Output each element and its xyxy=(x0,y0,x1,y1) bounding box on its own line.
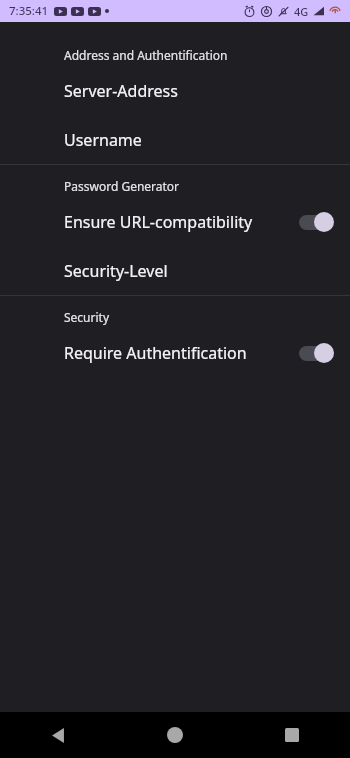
staticText: Security-Level xyxy=(64,260,334,282)
button[interactable]: Ensure URL-compatibility xyxy=(0,197,350,246)
staticText: Require Authentification xyxy=(64,342,298,364)
button[interactable]: Back xyxy=(0,712,116,758)
staticText: 4G xyxy=(294,4,309,19)
other: Toggle xyxy=(298,342,334,364)
button[interactable]: Require Authentification xyxy=(0,328,350,377)
staticText: Address and Authentification xyxy=(64,47,228,63)
staticText: Password Generator xyxy=(64,178,180,194)
staticText: Server-Address xyxy=(64,80,334,102)
staticText: Username xyxy=(64,129,334,151)
button[interactable]: Server-Address xyxy=(0,66,350,115)
button[interactable]: Recent apps xyxy=(233,712,350,758)
button[interactable]: Security-Level xyxy=(0,246,350,295)
staticText: Security xyxy=(64,309,110,325)
staticText: Ensure URL-compatibility xyxy=(64,211,298,233)
button[interactable]: Username xyxy=(0,115,350,164)
other: Toggle xyxy=(298,211,334,233)
button[interactable]: Home xyxy=(116,712,233,758)
staticText: 7:35:41 xyxy=(9,3,49,19)
